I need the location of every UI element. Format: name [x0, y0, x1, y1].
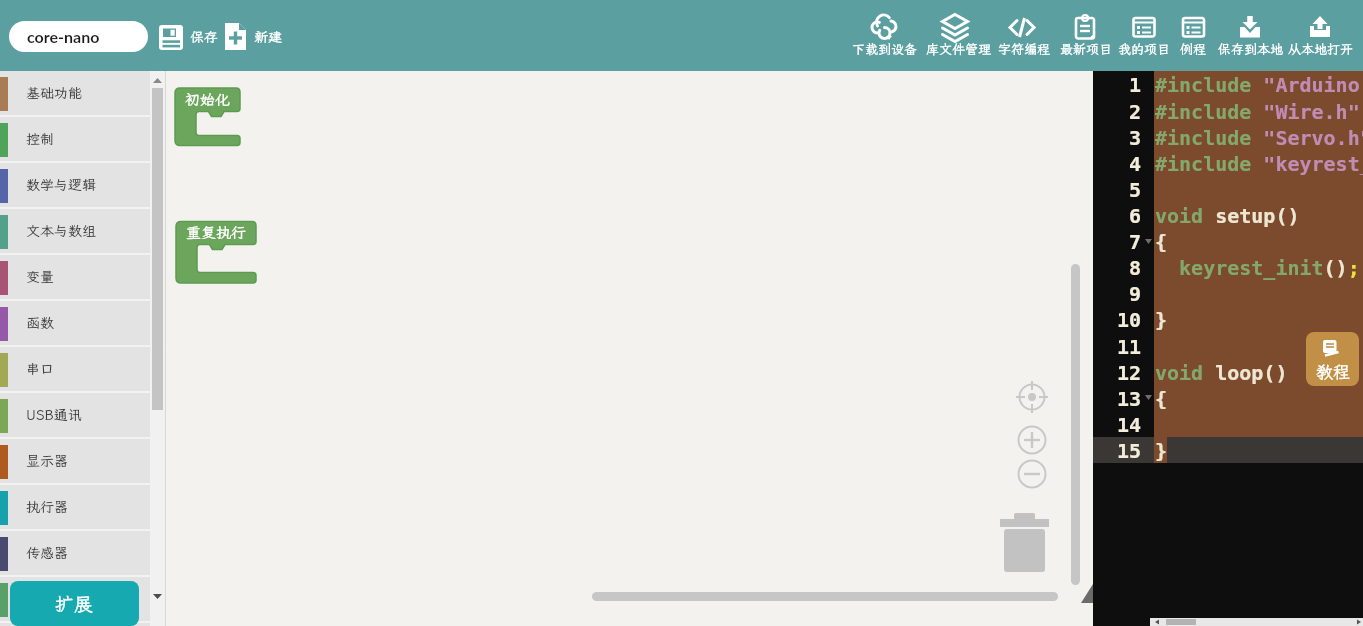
staticText: 字符编程 — [998, 41, 1051, 58]
button[interactable]: 从本地打开 — [1278, 10, 1363, 58]
button[interactable]: 变量 — [0, 255, 150, 301]
staticText: 显示器 — [26, 452, 68, 470]
button[interactable] — [1018, 460, 1046, 488]
staticText: } — [1155, 308, 1168, 331]
staticText: 新建 — [254, 28, 282, 46]
button[interactable]: 下载到设备 — [842, 10, 927, 58]
staticText: 4 — [1129, 152, 1142, 175]
staticText: 8 — [1129, 256, 1142, 279]
button[interactable]: 执行器 — [0, 485, 150, 531]
staticText: 变量 — [26, 268, 54, 286]
button[interactable]: 数学与逻辑 — [0, 163, 150, 209]
staticText: 7 — [1129, 230, 1142, 253]
button[interactable]: 显示器 — [0, 439, 150, 485]
staticText: 9 — [1129, 282, 1142, 305]
staticText: } — [1155, 439, 1168, 462]
staticText: #include "keyrest_m.h" — [1155, 152, 1363, 175]
staticText: 14 — [1117, 413, 1142, 436]
staticText: 传感器 — [26, 544, 68, 562]
button[interactable]: 新建 — [222, 22, 282, 52]
button[interactable]: 扩展 — [10, 581, 139, 626]
staticText: { — [1155, 230, 1168, 253]
staticText: 控制 — [26, 130, 54, 148]
staticText: 5 — [1129, 178, 1142, 201]
staticText: 教程 — [1316, 360, 1350, 382]
staticText: { — [1155, 387, 1168, 410]
button[interactable] — [1000, 512, 1049, 572]
staticText: 2 — [1129, 100, 1142, 123]
staticText: 最新项目 — [1060, 41, 1113, 58]
staticText: 我的项目 — [1118, 41, 1171, 58]
staticText: 重复执行 — [186, 223, 247, 243]
staticText: 下载到设备 — [852, 41, 918, 58]
staticText: void setup() — [1155, 204, 1300, 227]
staticText: 6 — [1129, 204, 1142, 227]
staticText: 从本地打开 — [1288, 41, 1354, 58]
button[interactable]: 传感器 — [0, 531, 150, 577]
staticText: 10 — [1117, 308, 1142, 331]
staticText: 库文件管理 — [926, 41, 992, 58]
button[interactable]: 文本与数组 — [0, 209, 150, 255]
staticText: #include "Servo.h" — [1155, 126, 1363, 149]
button[interactable] — [1018, 383, 1046, 411]
staticText: 3 — [1129, 126, 1142, 149]
staticText: void loop() — [1155, 361, 1288, 384]
staticText: 保存到本地 — [1218, 41, 1284, 58]
staticText: 基础功能 — [26, 84, 82, 102]
staticText: 函数 — [26, 314, 54, 332]
button[interactable] — [0, 577, 150, 623]
staticText: 例程 — [1180, 41, 1207, 58]
staticText: 数学与逻辑 — [26, 176, 96, 194]
button[interactable]: 例程 — [1173, 10, 1213, 58]
staticText: 文本与数组 — [26, 222, 96, 240]
staticText: 初始化 — [185, 90, 231, 110]
staticText: 13 — [1117, 387, 1142, 410]
staticText: 12 — [1117, 361, 1142, 384]
button[interactable] — [1018, 426, 1046, 454]
staticText: 15 — [1117, 439, 1142, 462]
button[interactable]: 库文件管理 — [916, 10, 1001, 58]
staticText: 执行器 — [26, 498, 68, 516]
button[interactable]: 串口 — [0, 347, 150, 393]
button[interactable]: 重复执行 — [176, 221, 256, 244]
button[interactable]: 控制 — [0, 117, 150, 163]
button[interactable]: core-nano — [9, 21, 148, 52]
staticText: keyrest_init(); — [1155, 256, 1360, 279]
staticText: 保存 — [190, 28, 218, 46]
staticText: USB通讯 — [26, 406, 82, 424]
staticText: #include "Wire.h" — [1155, 100, 1360, 123]
button[interactable]: 字符编程 — [989, 10, 1059, 58]
staticText: core-nano — [27, 27, 100, 46]
staticText: 串口 — [26, 360, 54, 378]
button[interactable]: 初始化 — [175, 88, 240, 111]
button[interactable]: 保存到本地 — [1208, 10, 1293, 58]
button[interactable]: 基础功能 — [0, 71, 150, 117]
button[interactable]: 函数 — [0, 301, 150, 347]
button[interactable]: USB通讯 — [0, 393, 150, 439]
staticText: 扩展 — [55, 591, 94, 616]
button[interactable]: 最新项目 — [1051, 10, 1121, 58]
staticText: #include "Arduino.h" — [1155, 73, 1363, 96]
button[interactable]: 教程 — [1306, 332, 1359, 386]
button[interactable]: 保存 — [156, 22, 218, 52]
staticText: 11 — [1117, 335, 1142, 358]
button[interactable]: 我的项目 — [1109, 10, 1179, 58]
staticText: 1 — [1129, 73, 1142, 96]
